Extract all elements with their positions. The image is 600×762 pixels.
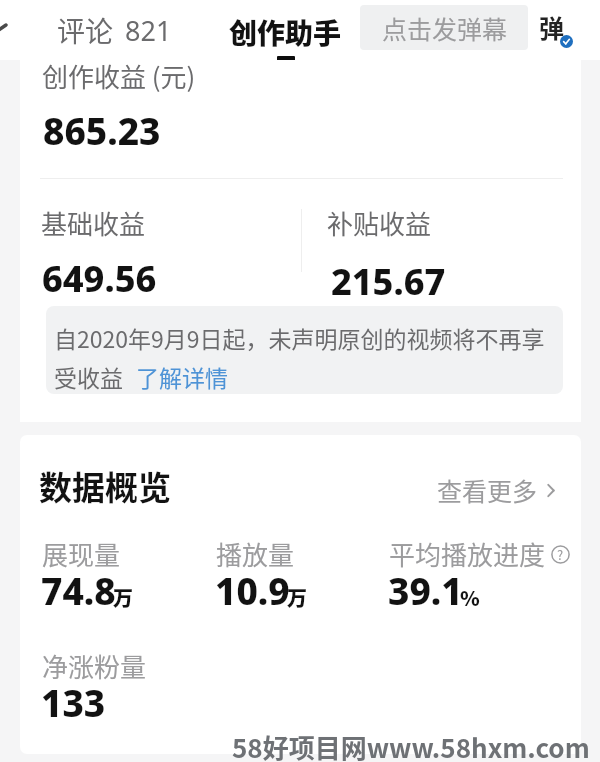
staticText: 自2020年9月9日起，未声明原创的视频将不再享 [54, 321, 545, 354]
staticText: 基础收益 [41, 204, 146, 242]
staticText: 播放量 [216, 535, 295, 573]
staticText: 215.67 [331, 257, 446, 306]
staticText: 受收益 [54, 360, 123, 393]
staticText: 创作助手 [229, 12, 342, 53]
staticText: 补贴收益 [327, 204, 432, 242]
staticText: 58好项目网www.58hxm.com [232, 728, 590, 762]
staticText: 了解详情 [136, 360, 228, 393]
staticText: 创作收益 (元) [42, 57, 196, 95]
button[interactable]: 了解详情 [136, 360, 228, 393]
staticText: 万 [113, 583, 133, 612]
staticText: 平均播放进度 [389, 535, 546, 573]
staticText: 74.8 [41, 565, 116, 615]
staticText: 649.56 [42, 254, 157, 303]
staticText: 展现量 [42, 535, 121, 573]
button[interactable]: 说明 [551, 545, 570, 564]
button[interactable]: 评论 [57, 10, 172, 51]
button[interactable]: 点击发弹幕 [360, 5, 528, 50]
staticText: 评论 [57, 10, 114, 51]
staticText: 弹 [539, 9, 565, 45]
staticText: % [460, 583, 480, 612]
staticText: 点击发弹幕 [382, 10, 508, 46]
other: Back [0, 25, 6, 35]
button[interactable]: 查看更多 [437, 472, 555, 508]
staticText: ? [557, 545, 564, 564]
staticText: 净涨粉量 [42, 647, 147, 685]
staticText: 865.23 [43, 105, 161, 155]
staticText: 10.9 [215, 565, 290, 615]
staticText: 39.1 [388, 565, 463, 615]
staticText: 万 [287, 583, 307, 612]
staticText: 133 [41, 677, 106, 727]
staticText: 821 [125, 12, 172, 49]
button[interactable]: 创作助手 [229, 12, 342, 62]
button[interactable]: 发弹幕 [528, 6, 575, 48]
staticText: 数据概览 [39, 462, 171, 510]
staticText: 查看更多 [437, 472, 538, 508]
